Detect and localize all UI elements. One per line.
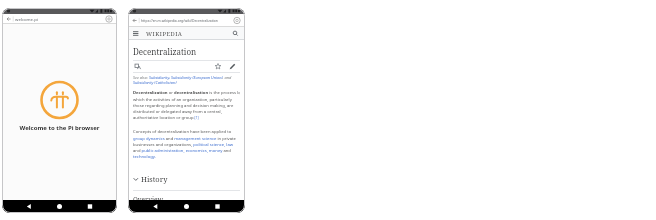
staticText: History [141,174,168,184]
staticText: Overview [133,195,164,204]
staticText: Welcome to the Pi browser [2,124,117,132]
staticText: Concepts of decentralization have been a… [133,129,236,159]
staticText: Decentralization [133,46,197,57]
staticText: See also: Subsidiarity, Subsidiarity (Eu… [133,75,232,80]
staticText: WIKIPEDIA [146,30,183,38]
staticText: Decentralization or decentralisation is … [133,90,240,120]
staticText: Subsidiarity (Catholicism) [133,80,177,85]
staticText: welcome.pi [15,16,38,22]
staticText: https://en.m.wikipedia.org/wiki/Decentra… [141,18,218,23]
